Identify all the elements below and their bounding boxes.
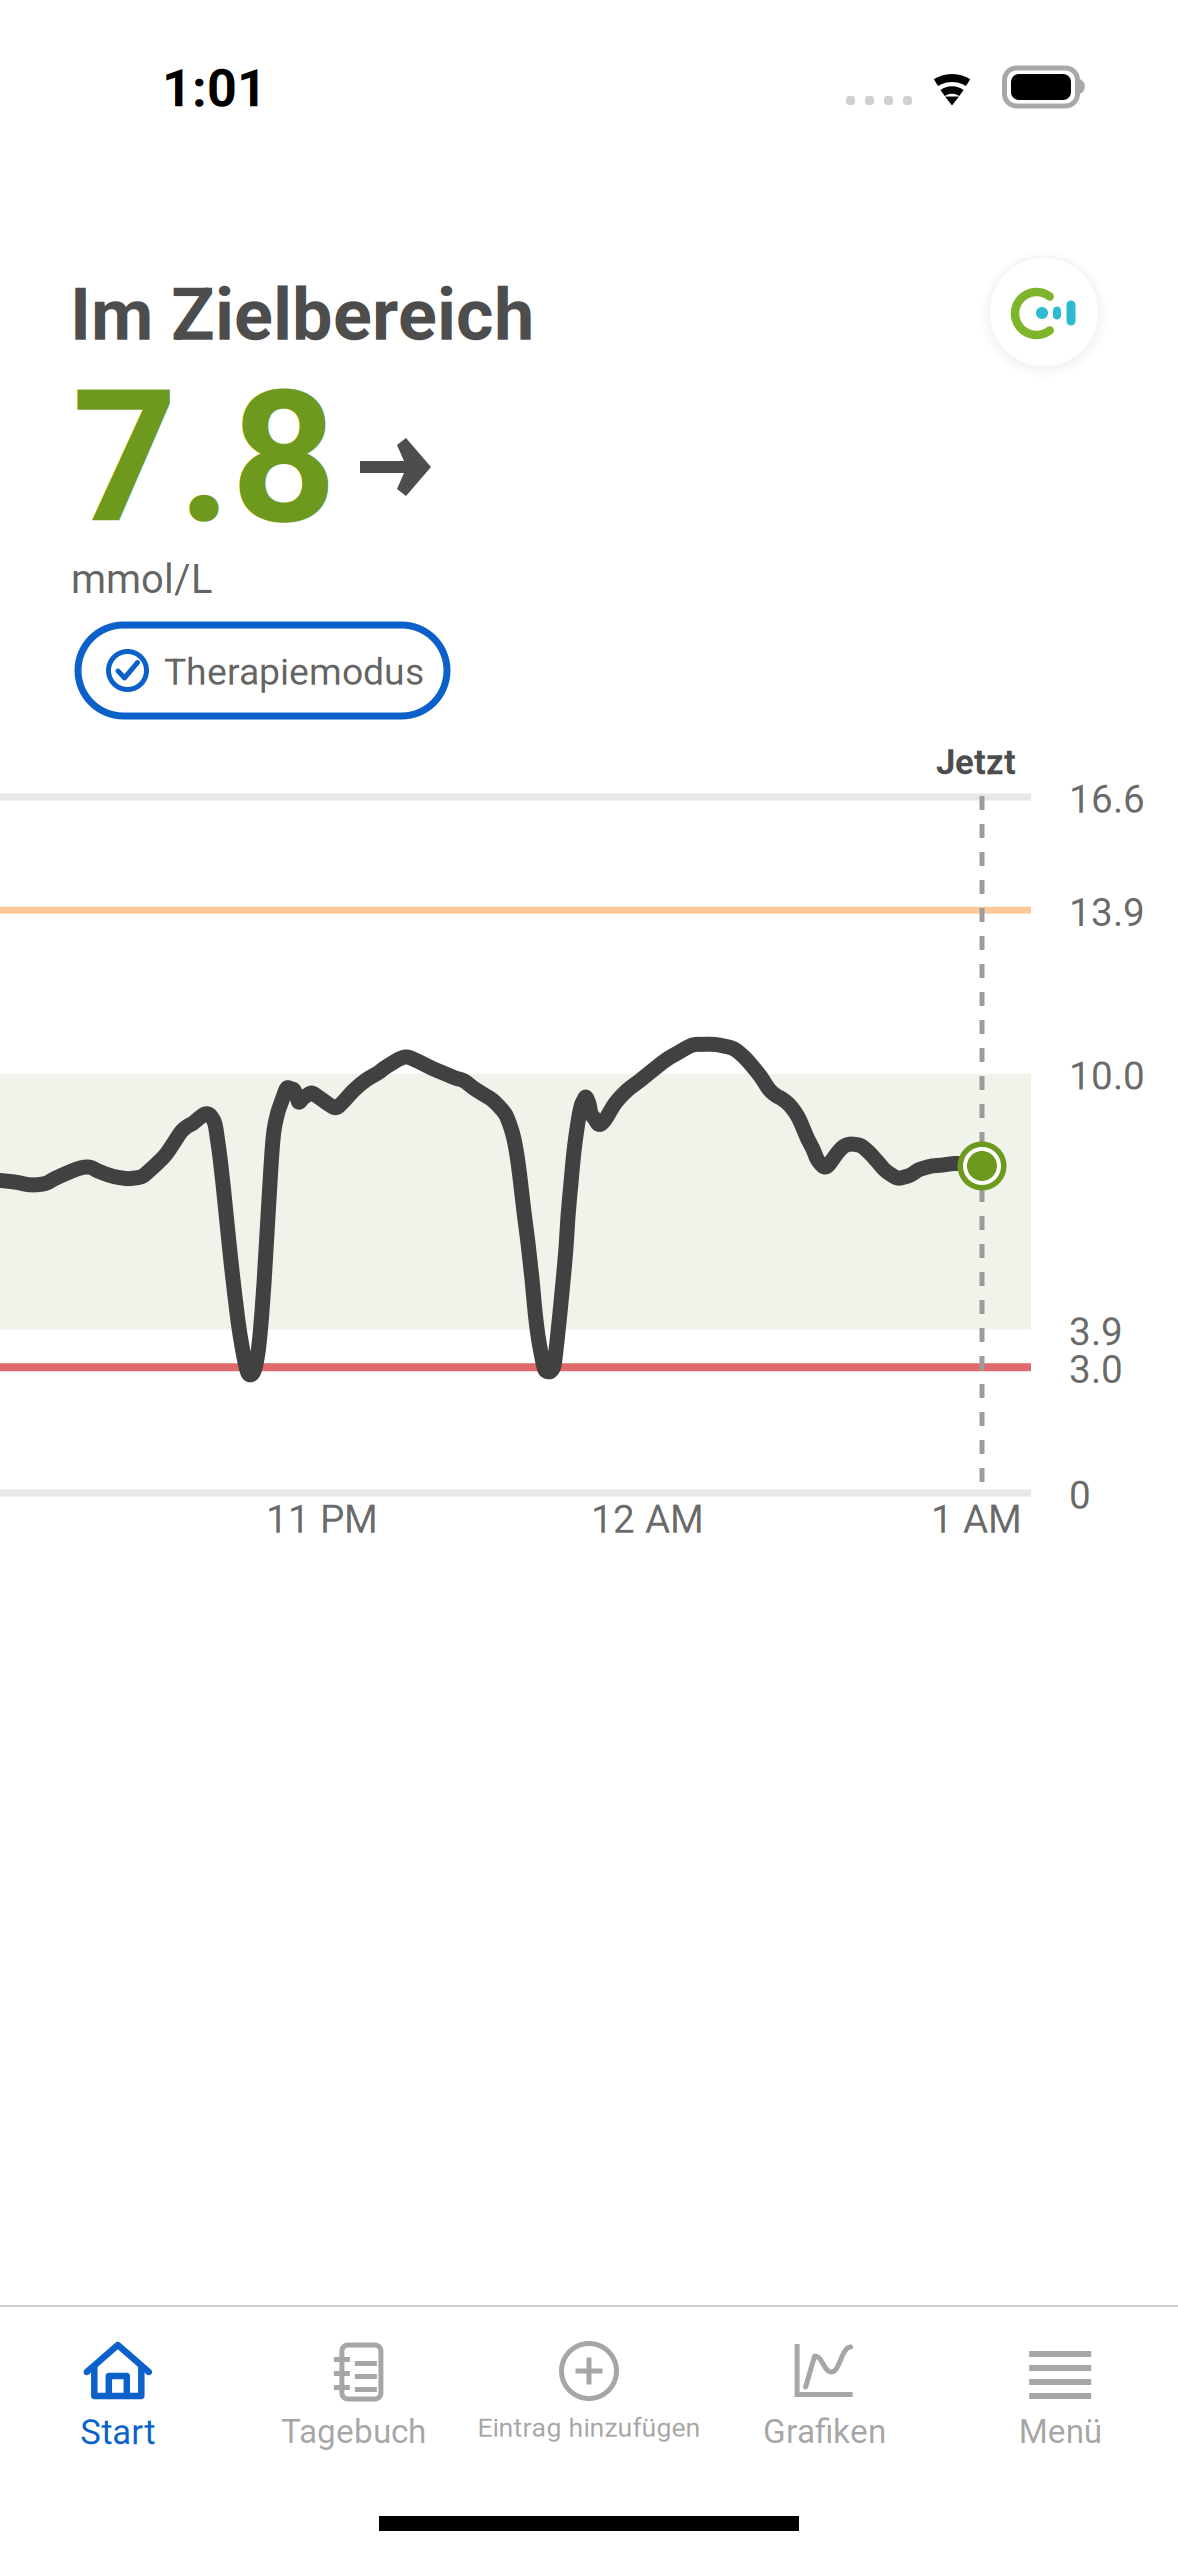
- button[interactable]: Sensor status: [999, 267, 1107, 375]
- staticText: Jetzt: [936, 742, 1016, 783]
- staticText: 10.0: [1069, 1054, 1145, 1099]
- staticText: 3.0: [1069, 1347, 1123, 1392]
- staticText: Eintrag hinzufügen: [477, 2412, 700, 2443]
- staticText: 11 PM: [266, 1497, 378, 1542]
- staticText: Menü: [1019, 2412, 1102, 2451]
- staticText: Therapiemodus: [164, 650, 424, 694]
- staticText: mmol/L: [71, 556, 213, 603]
- staticText: 0: [1069, 1473, 1091, 1518]
- staticText: 3.9: [1069, 1309, 1123, 1355]
- staticText: Grafiken: [763, 2412, 886, 2451]
- staticText: 16.6: [1069, 777, 1145, 822]
- button[interactable]: Tagebuch: [236, 2307, 471, 2507]
- staticText: Tagebuch: [281, 2412, 426, 2451]
- staticText: 12 AM: [591, 1497, 704, 1542]
- staticText: 1 AM: [931, 1497, 1022, 1542]
- staticText: 7.8: [72, 350, 337, 566]
- button[interactable]: Eintrag hinzufügen: [471, 2307, 707, 2507]
- button[interactable]: Menü: [942, 2307, 1178, 2507]
- button[interactable]: Grafiken: [707, 2307, 942, 2507]
- staticText: 1:01: [162, 58, 267, 119]
- staticText: Im Zielbereich: [70, 273, 534, 357]
- staticText: 13.9: [1069, 890, 1145, 935]
- button[interactable]: Therapiemodus: [78, 625, 447, 716]
- button[interactable]: Start: [0, 2307, 236, 2507]
- staticText: Start: [80, 2412, 155, 2453]
